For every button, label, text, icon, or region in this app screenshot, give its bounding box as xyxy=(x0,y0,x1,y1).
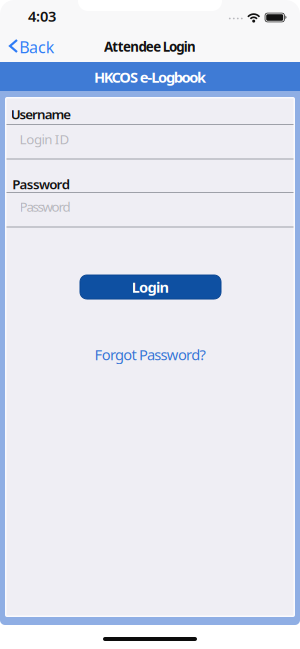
staticText: Forgot Password? xyxy=(94,345,205,364)
button[interactable]: Login ID xyxy=(6,122,293,156)
staticText: Login xyxy=(131,277,169,297)
button[interactable]: Back xyxy=(8,31,58,61)
staticText: HKCOS e-Logbook xyxy=(94,67,206,87)
button[interactable]: Forgot Password? xyxy=(94,345,205,364)
staticText: Username xyxy=(11,105,71,123)
staticText: Back xyxy=(19,36,55,58)
button[interactable]: Password xyxy=(6,189,293,223)
staticText: 4:03 xyxy=(28,6,56,26)
staticText: Password xyxy=(12,175,70,193)
staticText: Password xyxy=(19,198,70,215)
staticText: Attendee Login xyxy=(104,38,196,55)
button[interactable]: Login xyxy=(80,275,221,299)
staticText: Login ID xyxy=(19,130,69,148)
